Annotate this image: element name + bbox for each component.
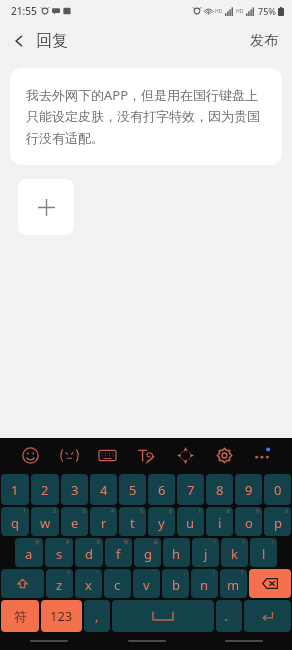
button[interactable]: 发布	[236, 24, 292, 58]
button[interactable]: Delete	[249, 569, 291, 598]
staticText: f	[116, 545, 121, 563]
button[interactable]: 。	[216, 600, 242, 632]
button[interactable]: %	[105, 538, 132, 567]
button[interactable]: 0	[264, 507, 291, 536]
staticText: s	[56, 545, 63, 563]
staticText: v	[143, 576, 150, 594]
staticText: a	[25, 545, 33, 563]
button[interactable]: 0	[264, 474, 291, 505]
staticText: 6	[158, 481, 166, 499]
button[interactable]: !	[191, 569, 218, 598]
button[interactable]: )	[250, 538, 277, 567]
button[interactable]: 符	[1, 600, 39, 632]
button[interactable]: Navigation	[0, 632, 98, 650]
button[interactable]: Space	[112, 600, 214, 632]
staticText: r	[101, 514, 107, 532]
button[interactable]: Emoji	[17, 442, 43, 468]
staticText: (	[243, 539, 245, 546]
button[interactable]: 2	[31, 474, 59, 505]
staticText: y	[158, 514, 165, 532]
button[interactable]: (	[221, 538, 248, 567]
button[interactable]: "	[75, 569, 102, 598]
staticText: 1	[23, 508, 26, 515]
staticText: )	[272, 539, 274, 546]
button[interactable]	[1, 569, 44, 598]
button[interactable]: ;	[162, 569, 189, 598]
button[interactable]: Add photo	[18, 179, 74, 235]
button[interactable]: 6	[148, 507, 175, 536]
button[interactable]: Kaomoji	[56, 442, 82, 468]
button[interactable]: @	[15, 538, 43, 567]
button[interactable]: 3	[61, 474, 88, 505]
staticText: 。	[224, 610, 234, 623]
button[interactable]: '	[104, 569, 131, 598]
button[interactable]: 3	[61, 507, 88, 536]
button[interactable]: $	[75, 538, 103, 567]
staticText: o	[245, 514, 253, 532]
button[interactable]: 4	[90, 474, 117, 505]
button[interactable]: 8	[206, 474, 233, 505]
staticText: HD	[236, 8, 244, 15]
button[interactable]: More options	[249, 442, 275, 468]
staticText: u	[186, 514, 195, 532]
staticText: HD	[215, 8, 223, 15]
button[interactable]: Enter	[244, 600, 291, 632]
staticText: 发布	[250, 32, 278, 50]
staticText: -	[185, 539, 187, 546]
staticText: l	[262, 545, 266, 563]
button[interactable]: &	[134, 538, 161, 567]
button[interactable]: Keyboard layout	[94, 442, 120, 468]
staticText: 8	[227, 508, 230, 515]
button[interactable]: 7	[177, 507, 204, 536]
staticText: h	[172, 545, 181, 563]
button[interactable]: 9	[235, 507, 262, 536]
button[interactable]: 9	[235, 474, 262, 505]
button[interactable]: 6	[148, 474, 175, 505]
button[interactable]: 2	[31, 507, 59, 536]
button[interactable]: Navigation	[98, 632, 195, 650]
staticText: %	[124, 539, 129, 546]
staticText: 21:55	[11, 4, 37, 18]
button[interactable]: 5	[119, 474, 146, 505]
button[interactable]: 4	[90, 507, 117, 536]
button[interactable]: :	[133, 569, 160, 598]
staticText: 5	[129, 481, 137, 499]
staticText: 7	[198, 508, 201, 515]
staticText: :	[155, 570, 157, 577]
staticText: w	[40, 514, 51, 532]
staticText: n	[200, 576, 209, 594]
button[interactable]: 5	[119, 507, 146, 536]
button[interactable]: *	[46, 569, 73, 598]
staticText: e	[71, 514, 79, 532]
staticText: @	[35, 539, 40, 546]
staticText: 0	[285, 508, 288, 515]
button[interactable]: Back	[0, 25, 80, 57]
staticText: g	[144, 545, 152, 563]
button[interactable]: Resize keyboard	[172, 442, 198, 468]
button[interactable]: 8	[206, 507, 233, 536]
staticText: 0	[274, 481, 282, 499]
button[interactable]: ,	[84, 600, 110, 632]
staticText: 2	[41, 481, 49, 499]
button[interactable]: 1	[1, 507, 29, 536]
button[interactable]: Navigation	[195, 632, 292, 650]
staticText: 符	[14, 608, 27, 624]
staticText: p	[274, 514, 282, 532]
button[interactable]: 123	[41, 600, 82, 632]
staticText: 我去外网下的APP，但是用在国行键盘上只能设定皮肤，没有打字特效，因为贵国行没有…	[26, 86, 266, 147]
staticText: t	[130, 514, 135, 532]
staticText: #	[66, 539, 70, 546]
staticText: '	[126, 570, 128, 577]
button[interactable]: Handwriting	[133, 442, 159, 468]
staticText: 75%	[258, 5, 276, 17]
button[interactable]: +	[192, 538, 219, 567]
button[interactable]: 1	[1, 474, 29, 505]
button[interactable]: #	[45, 538, 73, 567]
staticText: 回复	[36, 31, 68, 51]
button[interactable]: ?	[220, 569, 247, 598]
button[interactable]: Settings	[211, 442, 237, 468]
button[interactable]: 7	[177, 474, 204, 505]
button[interactable]: -	[163, 538, 190, 567]
staticText: *	[67, 570, 70, 577]
button[interactable]: 我去外网下的APP，但是用在国行键盘上只能设定皮肤，没有打字特效，因为贵国行没有…	[10, 68, 282, 165]
